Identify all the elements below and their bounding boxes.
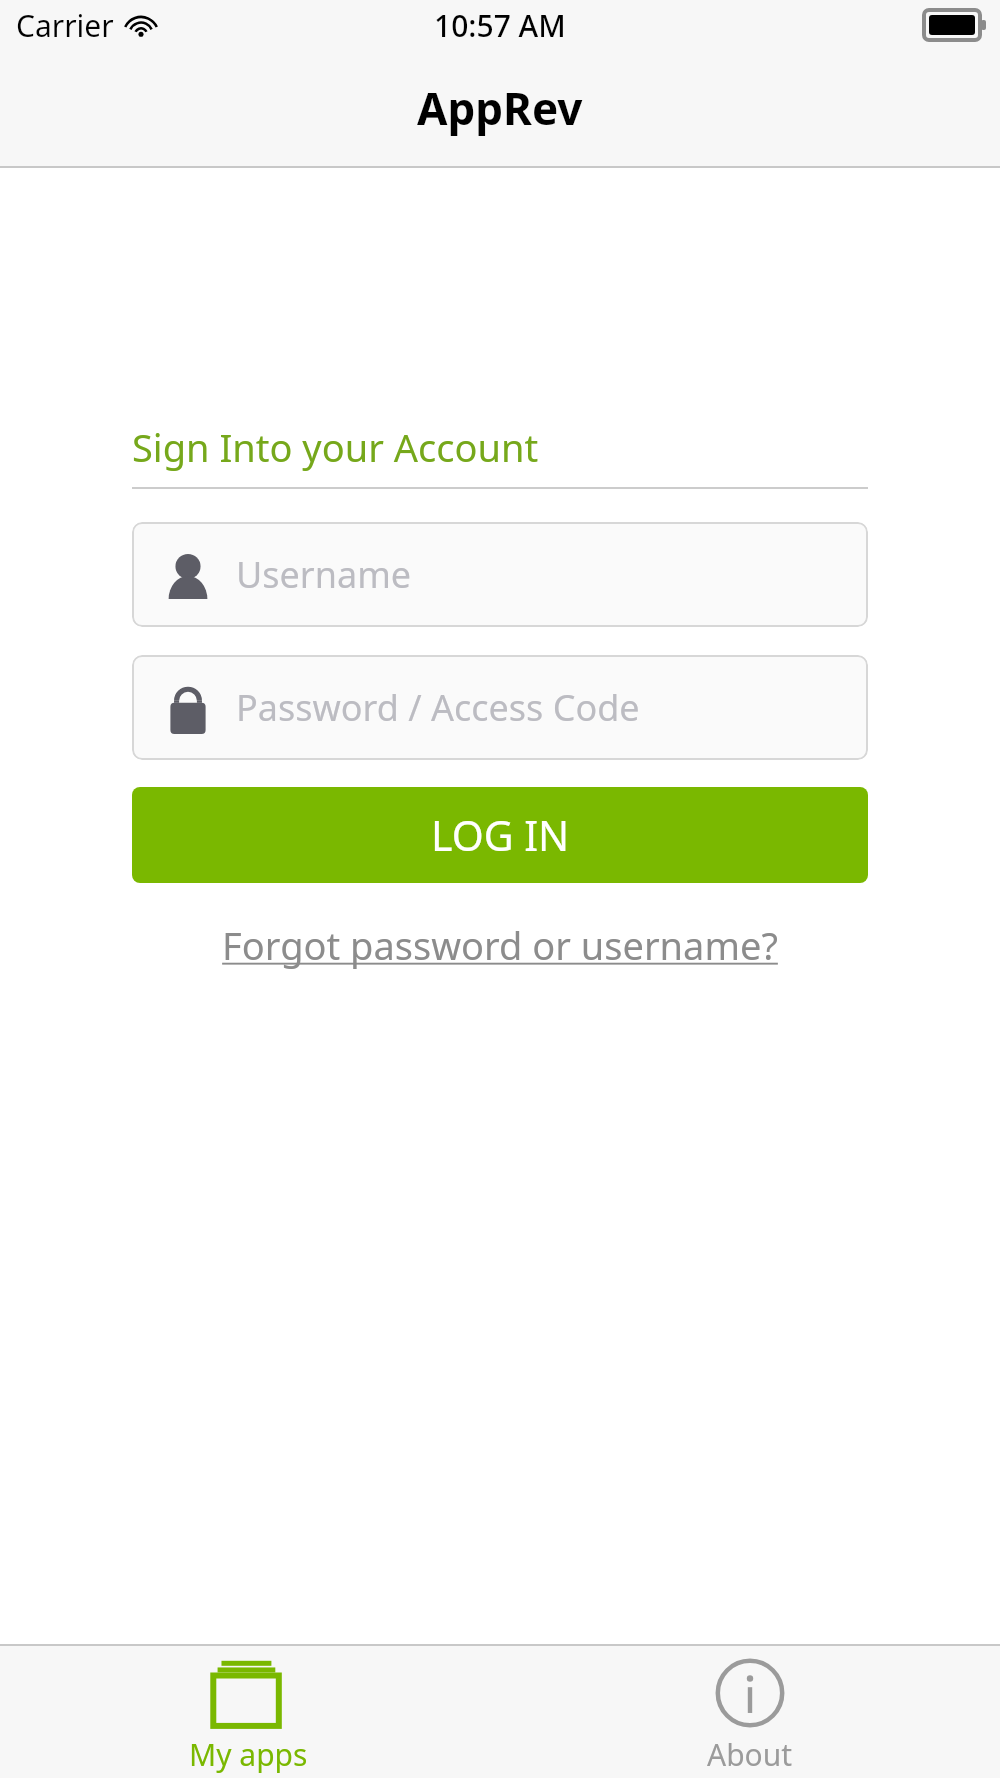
staticText: LOG IN: [431, 807, 570, 863]
button[interactable]: Username: [132, 522, 868, 627]
button[interactable]: My apps: [148, 1646, 348, 1775]
staticText: 10:57 AM: [434, 5, 566, 46]
staticText: Carrier: [16, 5, 114, 46]
staticText: Sign Into your Account: [132, 421, 539, 473]
staticText: About: [707, 1734, 793, 1775]
staticText: My apps: [189, 1734, 308, 1775]
staticText: Forgot password or username?: [132, 919, 868, 971]
staticText: Username: [236, 550, 412, 599]
button[interactable]: LOG IN: [132, 787, 868, 883]
staticText: Password / Access Code: [236, 683, 640, 732]
staticText: AppRev: [417, 78, 583, 138]
button[interactable]: Password / Access Code: [132, 655, 868, 760]
button[interactable]: Forgot password or username?: [132, 911, 868, 979]
button[interactable]: About: [650, 1646, 850, 1775]
